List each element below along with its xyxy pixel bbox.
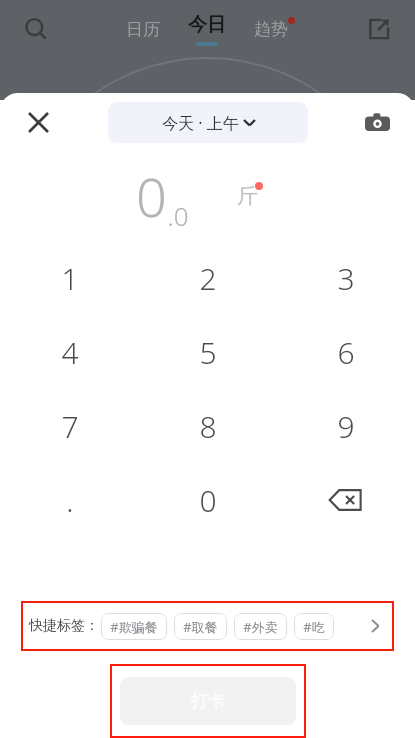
button[interactable]: Camera: [357, 102, 397, 142]
button[interactable]: .: [0, 463, 139, 537]
button[interactable]: 7: [0, 389, 139, 463]
staticText: #取餐: [183, 618, 218, 636]
button[interactable]: 5: [139, 315, 277, 389]
button[interactable]: 8: [139, 389, 277, 463]
staticText: 7: [61, 406, 79, 447]
staticText: 1: [61, 258, 79, 299]
staticText: 今天 · 上午: [162, 112, 239, 134]
button[interactable]: 2: [139, 241, 277, 315]
button[interactable]: 日历: [116, 13, 170, 46]
staticText: 今日: [188, 13, 226, 37]
button[interactable]: 4: [0, 315, 139, 389]
button[interactable]: 9: [277, 389, 415, 463]
staticText: #外卖: [243, 618, 278, 636]
button[interactable]: #吃: [294, 613, 334, 640]
staticText: #欺骗餐: [110, 618, 158, 636]
staticText: 趋势: [254, 19, 288, 40]
staticText: 打卡: [191, 691, 225, 712]
staticText: 0: [199, 480, 217, 521]
staticText: .0: [167, 198, 189, 233]
button[interactable]: 3: [277, 241, 415, 315]
staticText: 3: [337, 258, 355, 299]
staticText: 5: [199, 332, 217, 373]
button[interactable]: More tags: [364, 615, 386, 637]
button[interactable]: 1: [0, 241, 139, 315]
button[interactable]: Close: [18, 102, 58, 142]
button[interactable]: 趋势: [244, 13, 298, 46]
staticText: 9: [337, 406, 355, 447]
staticText: 4: [61, 332, 79, 373]
staticText: 快捷标签：: [29, 617, 99, 635]
staticText: .: [66, 480, 74, 521]
button[interactable]: 0: [139, 463, 277, 537]
staticText: #吃: [303, 618, 325, 636]
button[interactable]: 斤: [237, 183, 258, 209]
button[interactable]: #欺骗餐: [101, 613, 167, 640]
staticText: 8: [199, 406, 217, 447]
staticText: 斤: [237, 183, 258, 209]
button[interactable]: 6: [277, 315, 415, 389]
staticText: 2: [199, 258, 217, 299]
button[interactable]: Backspace: [277, 463, 415, 537]
staticText: 日历: [126, 19, 160, 40]
staticText: 6: [337, 332, 355, 373]
staticText: 0: [136, 159, 167, 233]
button[interactable]: 今天 · 上午: [108, 102, 308, 143]
button[interactable]: Search: [16, 9, 56, 49]
button[interactable]: #取餐: [174, 613, 227, 640]
button[interactable]: 今日: [188, 13, 226, 46]
button[interactable]: Share: [359, 9, 399, 49]
button[interactable]: #外卖: [234, 613, 287, 640]
